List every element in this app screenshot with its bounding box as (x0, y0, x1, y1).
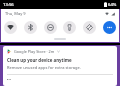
button[interactable]: Bluetooth (24, 21, 37, 34)
button[interactable]: Manage my apps (7, 75, 113, 83)
staticText: Thu, May 9 (5, 11, 26, 16)
staticText: Manage my apps (7, 78, 42, 80)
staticText: Google Play Store · 2m (14, 49, 55, 54)
button[interactable]: More settings (103, 21, 116, 34)
button[interactable]: Auto rotate (83, 21, 96, 34)
button[interactable]: Wi-Fi (4, 21, 17, 34)
staticText: Remove unused apps for extra storage. (7, 65, 81, 70)
button[interactable]: Flashlight (63, 21, 76, 34)
staticText: 64% (108, 2, 117, 8)
staticText: Clean up your device anytime (7, 57, 72, 63)
staticText: 13:56 (3, 2, 14, 8)
button[interactable]: Google Play Store · 2m (3, 46, 117, 86)
button[interactable]: Do Not Disturb (44, 21, 57, 34)
